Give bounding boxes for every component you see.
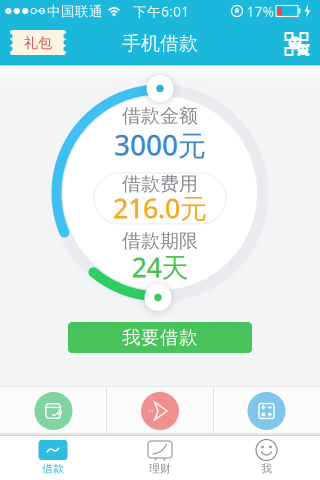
staticText: 我要借款 [122, 326, 198, 349]
button[interactable]: 计算器 [246, 391, 286, 431]
staticText: 中国联通 [47, 3, 103, 20]
button[interactable]: 发送 [140, 391, 180, 431]
button[interactable]: 扫码 [283, 31, 309, 57]
button[interactable]: 转账 [33, 391, 73, 431]
staticText: 手机借款 [122, 31, 198, 55]
button[interactable]: 理财 [107, 435, 213, 480]
button[interactable]: 我 [213, 435, 320, 480]
staticText: 24天 [131, 249, 188, 285]
staticText: 借款费用 [122, 172, 198, 196]
staticText: 216.0元 [113, 190, 207, 226]
staticText: 3000元 [114, 126, 206, 164]
staticText: 下午6:01 [133, 2, 189, 21]
staticText: 借款期限 [122, 229, 198, 253]
staticText: 17% [246, 2, 273, 21]
staticText: 理财 [149, 462, 171, 475]
staticText: 礼包 [24, 34, 52, 52]
staticText: 我 [261, 462, 272, 475]
staticText: 借款金额 [122, 104, 198, 128]
button[interactable]: 我要借款 [68, 322, 252, 353]
button[interactable]: 借款 [0, 435, 106, 480]
staticText: 借款 [42, 462, 64, 475]
button[interactable]: 礼包 [10, 30, 66, 55]
